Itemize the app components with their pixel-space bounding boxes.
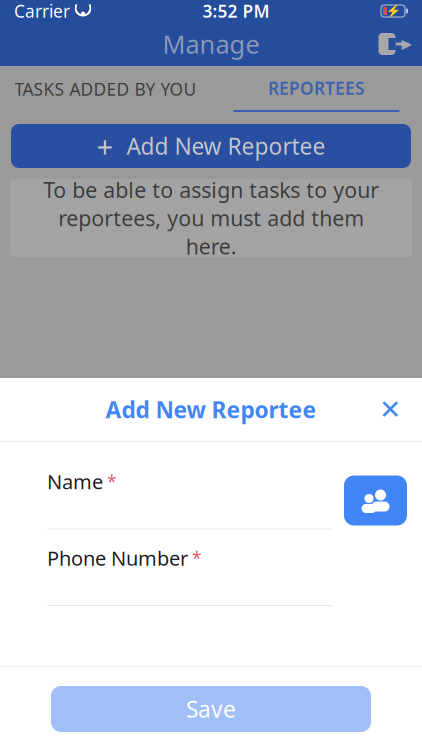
staticText: Phone Number [47, 545, 188, 571]
staticText: To be able to assign tasks to your repor… [43, 175, 379, 260]
staticText: Add New Reportee [126, 131, 325, 161]
staticText: ▶ [401, 36, 411, 51]
staticText: 3:52 PM [202, 0, 269, 22]
button[interactable]: Save [51, 686, 371, 732]
staticText: Add New Reportee [105, 394, 316, 424]
staticText: TASKS ADDED BY YOU [14, 77, 196, 100]
staticText: ⚡ [385, 4, 400, 18]
button[interactable]: Close [368, 387, 412, 431]
button[interactable]: Choose from contacts [344, 475, 407, 525]
staticText: Carrier [14, 0, 70, 22]
staticText: Name [47, 468, 103, 495]
staticText: Save [186, 694, 236, 724]
button[interactable]: TASKS ADDED BY YOU [0, 66, 211, 112]
staticText: REPORTEES [268, 76, 365, 99]
button[interactable]: Log out [374, 27, 414, 61]
staticText: Manage [162, 27, 259, 61]
staticText: * [192, 546, 202, 569]
staticText: + [96, 126, 113, 165]
button[interactable]: REPORTEES [211, 66, 422, 112]
staticText: ✕ [379, 394, 401, 425]
staticText: * [107, 470, 117, 493]
button[interactable]: + [11, 124, 411, 168]
